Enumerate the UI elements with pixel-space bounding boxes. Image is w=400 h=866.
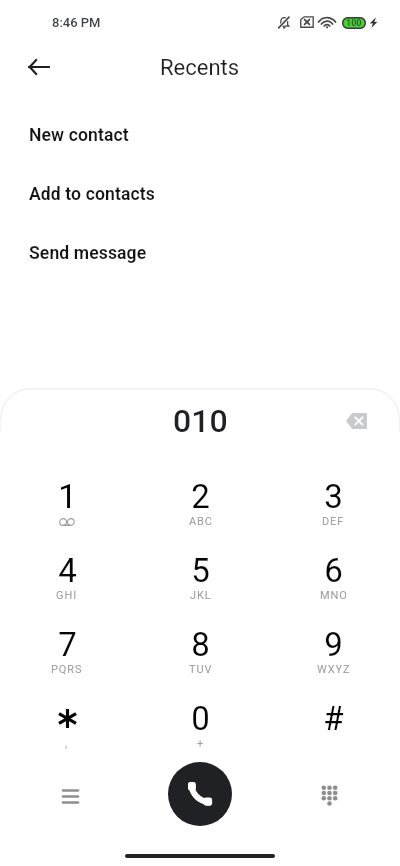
button[interactable]: Send message — [0, 224, 400, 283]
staticText: 2 — [191, 477, 210, 516]
button[interactable]: 9 — [267, 625, 400, 699]
button[interactable]: 4 — [0, 551, 134, 625]
button[interactable]: Call — [168, 762, 232, 826]
staticText: GHI — [56, 589, 78, 602]
staticText: 010 — [173, 402, 228, 440]
staticText: 4 — [58, 551, 77, 590]
staticText: TUV — [189, 663, 213, 676]
button[interactable]: , — [0, 699, 134, 773]
staticText: MNO — [320, 589, 348, 602]
staticText: JKL — [190, 589, 212, 602]
staticText: 8 — [191, 625, 210, 664]
button[interactable]: 1 — [0, 477, 134, 551]
button[interactable]: New contact — [0, 106, 400, 165]
button[interactable]: 2 — [134, 477, 267, 551]
staticText: 100 — [346, 18, 362, 29]
button[interactable]: Dialpad — [305, 771, 353, 819]
staticText: , — [65, 737, 69, 750]
staticText: 0 — [191, 699, 210, 738]
button[interactable]: 0 — [134, 699, 267, 773]
button[interactable]: 6 — [267, 551, 400, 625]
staticText: Recents — [160, 55, 240, 81]
staticText: PQRS — [51, 663, 83, 676]
staticText: + — [197, 737, 205, 750]
button[interactable]: Backspace — [334, 399, 378, 443]
button[interactable]: 7 — [0, 625, 134, 699]
staticText: 3 — [324, 477, 343, 516]
staticText: 8:46 PM — [52, 15, 101, 30]
staticText: 1 — [58, 477, 77, 516]
staticText: New contact — [29, 125, 129, 146]
staticText: 6 — [324, 551, 343, 590]
button[interactable]: Add to contacts — [0, 165, 400, 224]
staticText: Send message — [29, 243, 147, 264]
staticText: DEF — [322, 515, 345, 528]
staticText: 7 — [58, 625, 77, 664]
button[interactable]: Back — [15, 43, 63, 91]
button[interactable]: 8 — [134, 625, 267, 699]
button[interactable]: Call log — [46, 772, 94, 820]
button[interactable]: 3 — [267, 477, 400, 551]
staticText: # — [323, 699, 344, 738]
staticText: WXYZ — [317, 663, 351, 676]
staticText: Add to contacts — [29, 184, 155, 205]
button[interactable]: # — [267, 699, 400, 773]
staticText: 5 — [191, 551, 210, 590]
button[interactable]: 5 — [134, 551, 267, 625]
staticText: ABC — [189, 515, 213, 528]
staticText: 9 — [324, 625, 343, 664]
